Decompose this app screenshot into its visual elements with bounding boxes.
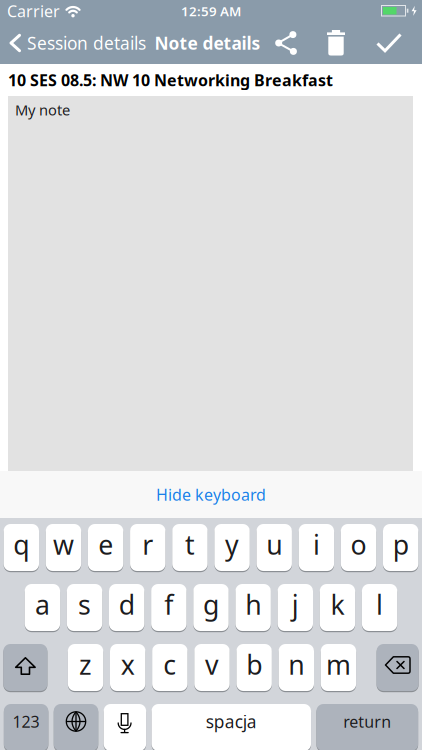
staticText: b [246,647,262,682]
staticText: q [13,527,29,562]
button[interactable]: c [152,644,188,691]
button[interactable]: Save [367,22,411,64]
staticText: 10 SES 08.5: NW 10 Networking Breakfast [8,69,333,91]
staticText: s [78,587,91,622]
button[interactable]: y [214,524,250,571]
staticText: i [313,527,320,562]
staticText: l [376,587,383,622]
button[interactable]: z [68,644,103,691]
button[interactable]: a [25,584,60,631]
button[interactable]: Next keyboard [54,704,98,750]
button[interactable]: q [4,524,39,571]
button[interactable]: v [194,644,230,691]
button[interactable]: s [67,584,102,631]
staticText: w [53,527,74,562]
button[interactable]: e [88,524,123,571]
staticText: Session details [27,31,146,54]
button[interactable]: x [110,644,145,691]
staticText: My note [15,100,70,119]
button[interactable]: w [46,524,81,571]
staticText: f [164,587,173,622]
staticText: Carrier [7,0,60,22]
button[interactable]: r [130,524,165,571]
staticText: j [292,587,299,622]
button[interactable]: m [321,644,356,691]
button[interactable]: u [256,524,292,571]
button[interactable]: j [278,584,313,631]
staticText: u [266,527,282,562]
staticText: h [245,587,261,622]
staticText: g [203,587,219,622]
button[interactable]: h [235,584,271,631]
button[interactable]: g [193,584,229,631]
button[interactable]: spacja [152,704,311,750]
staticText: 123 [13,711,40,732]
button[interactable]: d [109,584,144,631]
button[interactable]: Hide keyboard [0,471,422,518]
staticText: a [35,587,50,622]
button[interactable]: i [299,524,334,571]
staticText: x [121,647,135,682]
staticText: y [225,527,239,562]
staticText: return [343,711,391,732]
button[interactable]: o [341,524,376,571]
button[interactable]: Backspace [377,644,419,691]
staticText: r [142,527,153,562]
staticText: p [393,527,409,562]
staticText: spacja [206,710,257,733]
button[interactable]: n [279,644,314,691]
staticText: d [119,587,135,622]
staticText: k [330,587,344,622]
staticText: Note details [154,31,260,54]
staticText: v [205,647,219,682]
button[interactable]: k [320,584,355,631]
button[interactable]: b [236,644,272,691]
button[interactable]: Dictate [104,704,146,750]
button[interactable]: f [151,584,187,631]
button[interactable]: t [172,524,208,571]
button[interactable]: Back [0,31,146,54]
button[interactable]: return [316,704,418,750]
staticText: 12:59 AM [181,2,241,20]
staticText: n [288,647,304,682]
button[interactable]: Shift [3,644,47,691]
staticText: c [163,647,176,682]
staticText: m [326,647,351,682]
staticText: o [350,527,366,562]
staticText: t [185,527,195,562]
button[interactable]: Delete [314,22,358,64]
button[interactable]: l [362,584,397,631]
button[interactable]: 123 [4,704,48,750]
staticText: Hide keyboard [156,484,266,505]
staticText: e [98,527,113,562]
staticText: z [79,647,92,682]
button[interactable]: p [383,524,418,571]
button[interactable]: Share [264,22,308,64]
